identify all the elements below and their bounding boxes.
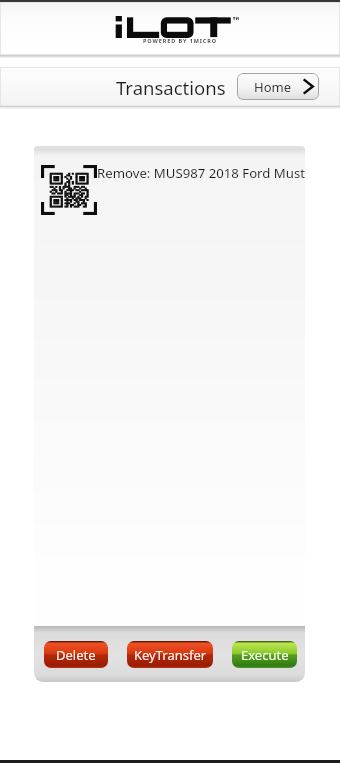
other: iLOT logo xyxy=(114,16,226,38)
staticText: Execute xyxy=(241,646,289,664)
button[interactable]: Home xyxy=(237,73,319,100)
staticText: Remove: MUS987 2018 Ford Mustang xyxy=(97,164,305,182)
staticText: Home xyxy=(254,78,291,96)
staticText: KeyTransfer xyxy=(134,646,207,664)
staticText: POWERED BY 1MICRO xyxy=(143,37,218,44)
staticText: Transactions xyxy=(116,75,226,100)
other: Go home xyxy=(302,78,314,95)
other: Scan QR code xyxy=(41,165,97,215)
button[interactable]: Execute xyxy=(232,641,297,668)
staticText: Delete xyxy=(56,646,96,664)
button[interactable]: KeyTransfer xyxy=(127,641,213,668)
button[interactable]: Scan QR code xyxy=(34,156,305,212)
button[interactable]: Delete xyxy=(44,641,108,668)
